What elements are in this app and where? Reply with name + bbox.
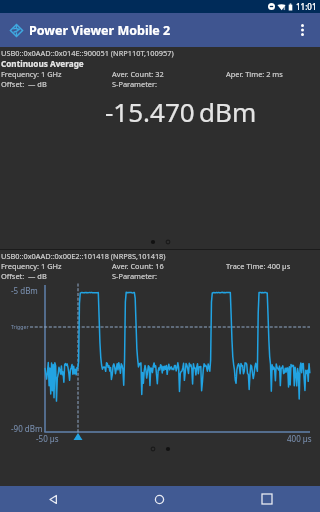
staticText: -90 dBm: [11, 423, 43, 434]
staticText: Frequency: 1 GHz: [1, 69, 62, 79]
staticText: 400 µs: [287, 433, 312, 444]
staticText: Trigger: [11, 323, 29, 330]
staticText: Aper. Time: 2 ms: [226, 69, 283, 79]
staticText: -50 µs: [36, 433, 59, 444]
staticText: Trace Time: 400 µs: [226, 261, 291, 271]
staticText: -5 dBm: [11, 285, 38, 296]
button[interactable]: More options: [286, 14, 318, 46]
staticText: USB0::0x0AAD::0x00E2::101418 (NRP8S,1014…: [1, 251, 320, 261]
staticText: Continuous Average: [1, 58, 84, 69]
staticText: Aver. Count: 32: [112, 69, 164, 79]
staticText: -15.470 dBm: [105, 94, 257, 129]
staticText: Offset: — dB: [1, 79, 47, 89]
staticText: Frequency: 1 GHz: [1, 261, 62, 271]
staticText: USB0::0x0AAD::0x014E::900051 (NRP110T,10…: [1, 48, 320, 58]
staticText: Offset: — dB: [1, 271, 47, 281]
button[interactable]: Back: [0, 486, 106, 512]
button[interactable]: Home: [106, 486, 213, 512]
button[interactable]: Recent apps: [213, 486, 320, 512]
staticText: Aver. Count: 16: [112, 261, 164, 271]
staticText: S-Parameter:: [112, 271, 158, 281]
staticText: 11:01: [296, 1, 317, 12]
staticText: Power Viewer Mobile 2: [29, 22, 171, 39]
staticText: S-Parameter:: [112, 79, 158, 89]
